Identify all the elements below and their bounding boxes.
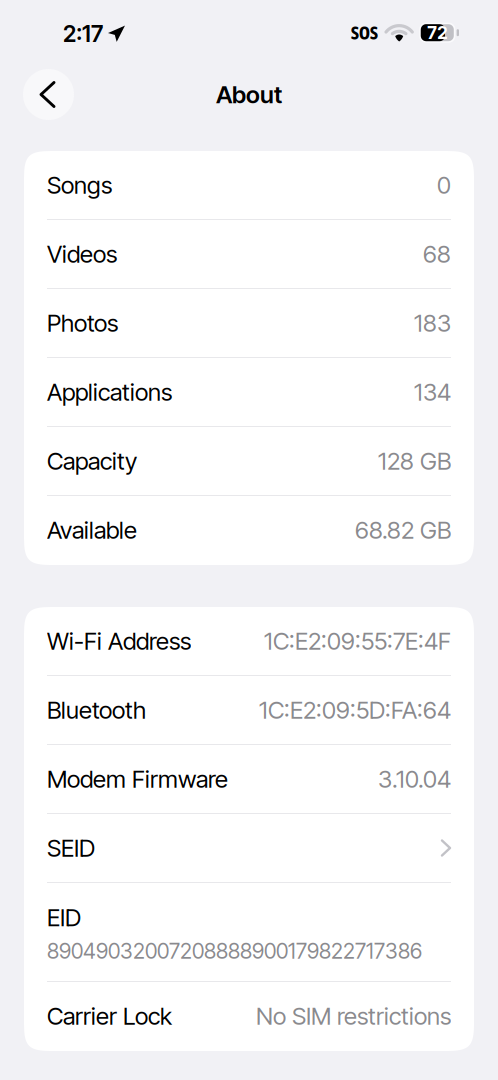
staticText: 128 GB [378,446,451,475]
button[interactable]: Available [24,496,474,565]
staticText: SEID [47,833,95,862]
staticText: EID [47,903,81,932]
staticText: Applications [47,377,172,406]
button[interactable]: Bluetooth [24,676,474,745]
button[interactable]: Photos [24,289,474,358]
staticText: 0 [437,170,451,199]
staticText: Modem Firmware [47,764,228,793]
staticText: 72 [427,22,447,43]
staticText: Capacity [47,446,137,475]
button[interactable]: Carrier Lock [24,982,474,1051]
staticText: Songs [47,170,112,199]
button[interactable]: Back [23,69,74,120]
staticText: Videos [47,239,117,268]
staticText: Carrier Lock [47,1001,172,1030]
button[interactable]: Videos [24,220,474,289]
staticText: Photos [47,308,118,337]
button[interactable]: Capacity [24,427,474,496]
button[interactable]: Modem Firmware [24,745,474,814]
staticText: 89049032007208888900179822717386 [47,938,422,964]
staticText: 68.82 GB [355,515,451,544]
staticText: Available [47,515,137,544]
staticText: 68 [423,239,451,268]
staticText: Bluetooth [47,695,146,724]
button[interactable]: Wi-Fi Address [24,607,474,676]
staticText: 2:17 [63,20,103,47]
staticText: About [216,80,282,109]
button[interactable]: Applications [24,358,474,427]
staticText: 183 [414,308,451,337]
button[interactable]: SEID [24,814,474,883]
button[interactable]: Songs [24,151,474,220]
button[interactable]: EID [24,883,474,982]
staticText: No SIM restrictions [256,1001,451,1030]
staticText: 134 [414,377,451,406]
staticText: 3.10.04 [378,764,451,793]
staticText: 1C:E2:09:55:7E:4F [264,626,451,655]
staticText: SOS [351,22,378,43]
staticText: 1C:E2:09:5D:FA:64 [259,695,451,724]
staticText: Wi-Fi Address [47,626,191,655]
